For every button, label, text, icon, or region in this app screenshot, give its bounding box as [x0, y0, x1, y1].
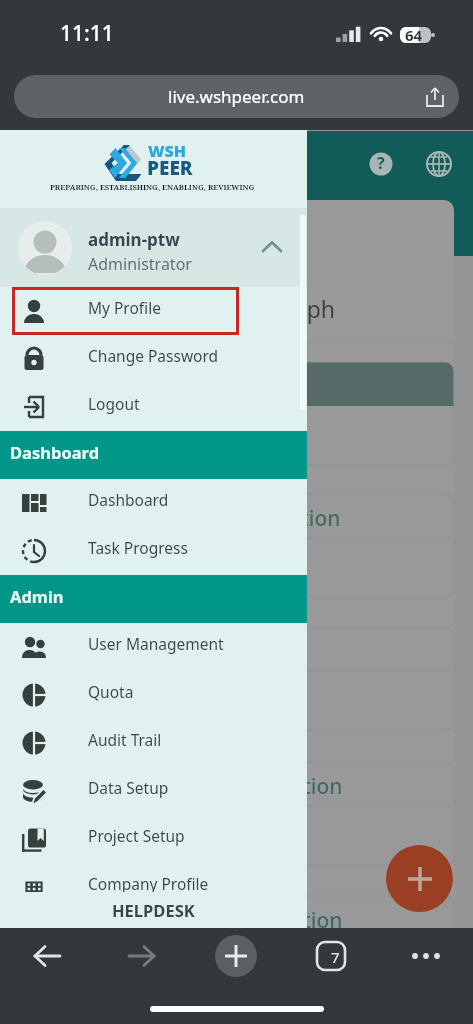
staticText: Quota: [88, 681, 134, 702]
staticText: Task Progress: [88, 537, 188, 558]
button[interactable]: Task Progress: [0, 527, 307, 575]
staticText: Dashboard: [10, 441, 100, 463]
button[interactable]: Company Profile: [0, 863, 307, 911]
staticText: live.wshpeer.com: [168, 85, 305, 108]
button[interactable]: New tab: [188, 928, 283, 984]
button[interactable]: Add: [386, 845, 453, 912]
staticText: My Profile: [88, 297, 161, 318]
button[interactable]: Forward: [94, 928, 188, 984]
staticText: 7: [331, 947, 340, 967]
staticText: 64: [405, 25, 423, 45]
button[interactable]: admin-ptw: [0, 208, 307, 287]
staticText: User Management: [88, 633, 224, 654]
button[interactable]: Tabs: [283, 928, 378, 984]
button[interactable]: Back: [0, 928, 94, 984]
button[interactable]: live.wshpeer.com: [14, 75, 459, 118]
staticText: Information: [221, 906, 343, 935]
staticText: Change Password: [88, 345, 219, 366]
button[interactable]: Quota: [0, 671, 307, 719]
button[interactable]: HELPDESK: [0, 892, 307, 930]
staticText: Administrator: [88, 253, 192, 275]
button[interactable]: Collapse: [252, 228, 292, 268]
staticText: Audit Trail: [88, 729, 162, 750]
staticText: ?: [377, 152, 385, 174]
button[interactable]: User Management: [0, 623, 307, 671]
button[interactable]: Audit Trail: [0, 719, 307, 767]
staticText: Admin: [10, 585, 64, 607]
staticText: Data Setup: [88, 777, 169, 798]
button[interactable]: Language: [427, 152, 451, 176]
staticText: Project Setup: [88, 825, 185, 846]
button[interactable]: Admin: [10, 575, 307, 623]
staticText: WSH: [148, 140, 187, 162]
button[interactable]: Data Setup: [0, 767, 307, 815]
button[interactable]: Dashboard: [10, 431, 307, 479]
button[interactable]: Dashboard: [0, 479, 307, 527]
button[interactable]: Help: [369, 152, 393, 176]
button[interactable]: My Profile: [0, 287, 307, 335]
button[interactable]: Logout: [0, 383, 307, 431]
button[interactable]: Project Setup: [0, 815, 307, 863]
staticText: 11:11: [60, 19, 114, 48]
staticText: Information: [221, 772, 343, 801]
button[interactable]: More options: [378, 928, 473, 984]
staticText: Dashboard: [88, 489, 169, 510]
staticText: Completion: [224, 504, 341, 533]
staticText: PREPARING, ESTABLISHING, ENABLING, REVIE…: [50, 182, 255, 192]
staticText: admin-ptw: [88, 228, 180, 251]
staticText: Graph: [268, 293, 336, 324]
staticText: Company Profile: [88, 873, 209, 894]
staticText: PEER: [147, 155, 193, 181]
staticText: HELPDESK: [112, 899, 195, 921]
button[interactable]: Change Password: [0, 335, 307, 383]
staticText: Logout: [88, 393, 140, 414]
button[interactable]: Share: [421, 83, 449, 111]
